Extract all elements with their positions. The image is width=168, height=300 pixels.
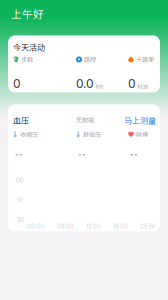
staticText: 06:00 [57, 223, 74, 230]
staticText: 00:00 [27, 223, 45, 230]
staticText: 脉搏 [136, 130, 148, 139]
staticText: 路程 [84, 55, 96, 64]
staticText: 步数 [21, 55, 33, 64]
staticText: 23:59 [140, 223, 154, 230]
staticText: 血压 [13, 114, 29, 126]
staticText: 舒张压 [83, 130, 101, 139]
button[interactable]: 马上测量 [124, 114, 156, 126]
staticText: 卡路里 [136, 55, 154, 64]
staticText: kcal [137, 83, 147, 90]
staticText: 无数据 [76, 115, 94, 124]
staticText: 马上测量 [124, 114, 156, 126]
staticText: 90 [17, 197, 24, 203]
staticText: 0 [128, 76, 136, 91]
staticText: 今天活动 [13, 41, 45, 53]
staticText: -- [78, 149, 86, 159]
staticText: 12:00 [86, 223, 101, 230]
staticText: 130 [15, 177, 24, 184]
staticText: 0.0 [76, 76, 94, 91]
staticText: 上午好 [11, 6, 44, 21]
staticText: 50 [17, 216, 24, 223]
staticText: 0 [13, 76, 21, 91]
staticText: -- [15, 149, 23, 159]
staticText: -- [130, 149, 138, 159]
staticText: 收缩压 [20, 130, 38, 139]
staticText: km [95, 83, 103, 90]
staticText: 18:00 [113, 223, 128, 230]
